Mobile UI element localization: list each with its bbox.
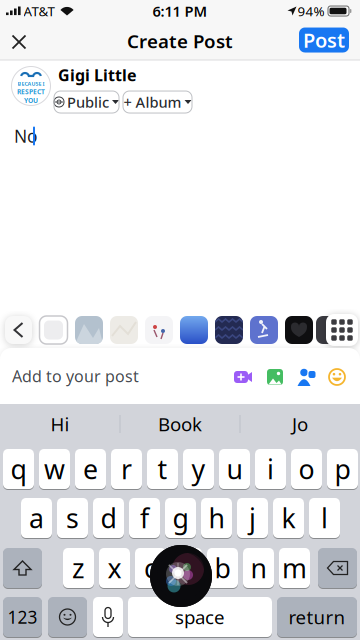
button[interactable]: Jo	[245, 406, 355, 442]
button[interactable]: return	[277, 597, 357, 637]
button[interactable]: Background option	[250, 316, 278, 344]
button[interactable]: Background option	[285, 316, 313, 344]
staticText: RESPECT	[17, 87, 45, 96]
staticText: t	[157, 451, 167, 487]
staticText: i	[267, 451, 274, 487]
button[interactable]: u	[219, 449, 250, 489]
staticText: Post	[303, 27, 345, 53]
staticText: j	[249, 500, 256, 536]
button[interactable]: numbers	[3, 597, 42, 637]
staticText: Book	[158, 412, 202, 436]
button[interactable]: Public	[54, 91, 119, 113]
staticText: r	[121, 451, 132, 487]
button[interactable]: m	[279, 548, 310, 588]
staticText: return	[288, 605, 345, 629]
button[interactable]: a	[21, 498, 52, 538]
button[interactable]: More backgrounds	[326, 314, 358, 346]
button[interactable]: Background option	[180, 316, 208, 344]
button[interactable]: y	[183, 449, 214, 489]
button[interactable]: f	[129, 498, 160, 538]
staticText: l	[321, 500, 328, 536]
button[interactable]: q	[3, 449, 34, 489]
button[interactable]: v	[171, 548, 202, 588]
button[interactable]: s	[57, 498, 88, 538]
button[interactable]: w	[39, 449, 70, 489]
button[interactable]: h	[201, 498, 232, 538]
staticText: YOU	[24, 96, 38, 105]
staticText: f	[140, 500, 149, 536]
button[interactable]: Photo or video	[266, 368, 284, 386]
staticText: w	[44, 451, 65, 487]
staticText: y	[191, 451, 205, 487]
staticText: x	[107, 550, 121, 586]
button[interactable]: dictate	[93, 597, 123, 637]
staticText: p	[334, 451, 350, 487]
button[interactable]: Post	[299, 27, 349, 52]
staticText: k	[281, 500, 295, 536]
staticText: c	[144, 550, 157, 586]
staticText: q	[10, 451, 26, 487]
button[interactable]: g	[165, 498, 196, 538]
button[interactable]: e	[75, 449, 106, 489]
button[interactable]: p	[327, 449, 358, 489]
staticText: + Album	[123, 92, 181, 112]
staticText: 94%	[297, 2, 324, 20]
staticText: o	[298, 451, 314, 487]
button[interactable]: r	[111, 449, 142, 489]
staticText: Hi	[50, 412, 69, 436]
staticText: Public	[67, 92, 109, 112]
staticText: Jo	[292, 412, 308, 436]
staticText: b	[214, 550, 230, 586]
button[interactable]: shift	[3, 548, 42, 588]
staticText: u	[226, 451, 242, 487]
button[interactable]: j	[237, 498, 268, 538]
button[interactable]: o	[291, 449, 322, 489]
staticText: z	[72, 550, 85, 586]
button[interactable]: n	[243, 548, 274, 588]
button[interactable]: Hi	[5, 406, 115, 442]
button[interactable]: k	[273, 498, 304, 538]
button[interactable]: space	[128, 597, 272, 637]
button[interactable]: l	[309, 498, 340, 538]
staticText: Add to your post	[12, 365, 139, 387]
staticText: v	[179, 550, 193, 586]
staticText: BECAUSE I	[17, 80, 44, 87]
button[interactable]: delete	[318, 548, 357, 588]
button[interactable]: + Album	[123, 91, 192, 113]
staticText: m	[282, 550, 307, 586]
button[interactable]: d	[93, 498, 124, 538]
button[interactable]: x	[99, 548, 130, 588]
button[interactable]: Add video	[233, 369, 253, 385]
staticText: Gigi Little	[58, 64, 137, 86]
staticText: d	[100, 500, 116, 536]
button[interactable]: Book	[125, 406, 235, 442]
staticText: 6:11 PM	[152, 1, 207, 21]
button[interactable]: z	[63, 548, 94, 588]
staticText: AT&T	[23, 2, 54, 20]
staticText: n	[250, 550, 266, 586]
button[interactable]: Background option	[145, 316, 173, 344]
staticText: Create Post	[127, 29, 233, 53]
staticText: s	[66, 500, 79, 536]
staticText: a	[29, 500, 44, 536]
button[interactable]: c	[135, 548, 166, 588]
button[interactable]: Hide backgrounds	[5, 316, 32, 344]
staticText: e	[83, 451, 98, 487]
button[interactable]: b	[207, 548, 238, 588]
staticText: g	[172, 500, 188, 536]
button[interactable]: Background option	[316, 316, 344, 344]
button[interactable]: Background option	[110, 316, 138, 344]
staticText: h	[208, 500, 224, 536]
staticText: space	[175, 605, 225, 629]
button[interactable]: t	[147, 449, 178, 489]
button[interactable]: Close	[4, 27, 34, 57]
button[interactable]: emoji	[48, 597, 87, 637]
button[interactable]: i	[255, 449, 286, 489]
button[interactable]: Feeling or activity	[328, 368, 346, 386]
button[interactable]: No background	[39, 316, 67, 344]
button[interactable]: Background option	[75, 316, 103, 344]
button[interactable]: Tag people	[297, 368, 315, 386]
button[interactable]: Background option	[215, 316, 243, 344]
staticText: 123	[7, 605, 37, 628]
staticText: No	[14, 124, 37, 147]
